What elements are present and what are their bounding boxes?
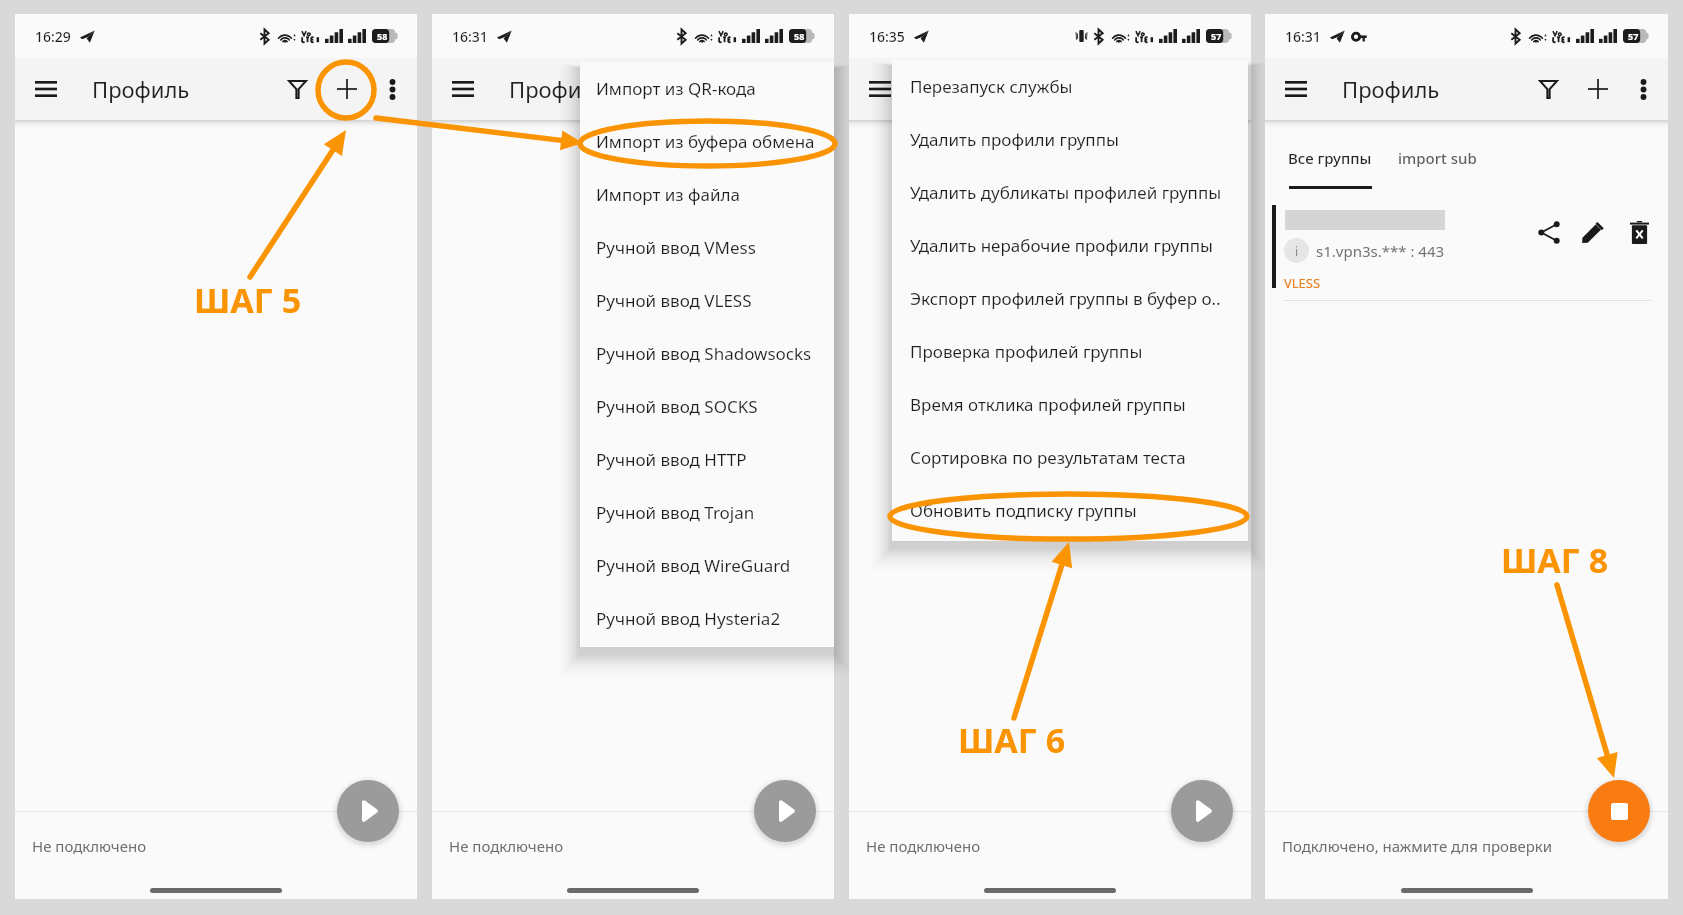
button[interactable]: Open navigation menu	[1277, 70, 1315, 108]
button[interactable]: Delete	[1621, 214, 1657, 250]
staticText: Обновить подписку группы	[910, 499, 1137, 522]
staticText: Проверка профилей группы	[910, 340, 1143, 363]
button[interactable]: Проверка профилей группы	[892, 325, 1248, 378]
button[interactable]: import sub	[1392, 144, 1483, 172]
staticText: ШАГ 8	[1501, 537, 1609, 583]
staticText: Не подключено	[449, 836, 564, 856]
staticText: Профиль	[1342, 74, 1440, 104]
staticText: Подключено, нажмите для проверки	[1282, 836, 1553, 856]
staticText: 16:35	[869, 27, 905, 46]
staticText: 57	[1211, 30, 1222, 42]
staticText: VLESS	[1284, 274, 1321, 292]
staticText: Ручной ввод Trojan	[596, 501, 755, 524]
staticText: ШАГ 5	[194, 277, 302, 323]
button[interactable]: Ручной ввод Shadowsocks	[580, 327, 834, 380]
staticText: 16:31	[1285, 27, 1321, 46]
button[interactable]: Время отклика профилей группы	[892, 378, 1248, 431]
staticText: Ручной ввод Hysteria2	[596, 607, 781, 630]
button[interactable]: Экспорт профилей группы в буфер о..	[892, 272, 1248, 325]
staticText: s1.vpn3s.*** : 443	[1316, 241, 1445, 261]
button[interactable]: Все группы	[1282, 144, 1378, 189]
button[interactable]: Filter	[688, 66, 740, 112]
button[interactable]: Start connection	[337, 780, 399, 842]
staticText: Не подключено	[32, 836, 147, 856]
staticText: Ручной ввод VLESS	[596, 289, 752, 312]
staticText: i	[1295, 243, 1299, 259]
staticText: ШАГ 6	[958, 717, 1066, 763]
button[interactable]: Ручной ввод HTTP	[580, 433, 834, 486]
button[interactable]: Share	[1531, 214, 1567, 250]
staticText: Профиль	[92, 74, 190, 104]
button[interactable]: Filter	[1522, 66, 1574, 112]
button[interactable]: Open navigation menu	[861, 70, 899, 108]
button[interactable]: Удалить дубликаты профилей группы	[892, 166, 1248, 219]
staticText: Импорт из буфера обмена	[596, 130, 815, 153]
button[interactable]: Open navigation menu	[444, 70, 482, 108]
staticText: 57	[1628, 30, 1639, 42]
button[interactable]: Импорт из файла	[580, 168, 834, 221]
button[interactable]: Импорт из буфера обмена	[580, 115, 834, 168]
button[interactable]: Перезапуск службы	[892, 60, 1248, 113]
button[interactable]: Add profile	[323, 65, 371, 113]
button[interactable]: Start connection	[1171, 780, 1233, 842]
staticText: Удалить дубликаты профилей группы	[910, 181, 1222, 204]
button[interactable]: Add profile	[1574, 65, 1622, 113]
button[interactable]: i	[1265, 205, 1668, 288]
button[interactable]: Add profile	[740, 65, 788, 113]
staticText: Время отклика профилей группы	[910, 393, 1186, 416]
button[interactable]: Ручной ввод VMess	[580, 221, 834, 274]
staticText: Экспорт профилей группы в буфер о..	[910, 287, 1221, 310]
button[interactable]: Ручной ввод Trojan	[580, 486, 834, 539]
staticText: 58	[377, 30, 388, 42]
button[interactable]: Edit	[1575, 214, 1611, 250]
button[interactable]: Filter	[271, 66, 323, 112]
button[interactable]: Ручной ввод SOCKS	[580, 380, 834, 433]
staticText: Профиль	[926, 74, 1024, 104]
button[interactable]: More options	[1622, 68, 1664, 110]
button[interactable]: Ручной ввод VLESS	[580, 274, 834, 327]
staticText: Ручной ввод SOCKS	[596, 395, 758, 418]
button[interactable]: Сортировка по результатам теста	[892, 431, 1248, 484]
staticText: Ручной ввод VMess	[596, 236, 756, 259]
staticText: Не подключено	[866, 836, 981, 856]
button[interactable]: Stop connection	[1588, 780, 1650, 842]
staticText: Профиль	[509, 74, 607, 104]
staticText: Импорт из QR-кода	[596, 77, 756, 100]
button[interactable]: Импорт из QR-кода	[580, 62, 834, 115]
staticText: 58	[794, 30, 805, 42]
staticText: Ручной ввод HTTP	[596, 448, 747, 471]
button[interactable]: Удалить нерабочие профили группы	[892, 219, 1248, 272]
staticText: Ручной ввод Shadowsocks	[596, 342, 812, 365]
staticText: 16:31	[452, 27, 488, 46]
staticText: Перезапуск службы	[910, 75, 1073, 98]
button[interactable]: Ручной ввод Hysteria2	[580, 592, 834, 645]
staticText: Удалить профили группы	[910, 128, 1119, 151]
staticText: Удалить нерабочие профили группы	[910, 234, 1213, 257]
staticText: 16:29	[35, 27, 71, 46]
staticText: Сортировка по результатам теста	[910, 446, 1186, 469]
button[interactable]: Open navigation menu	[27, 70, 65, 108]
button[interactable]: More options	[371, 68, 413, 110]
staticText: Все группы	[1288, 148, 1372, 168]
button[interactable]: Ручной ввод WireGuard	[580, 539, 834, 592]
staticText: Импорт из файла	[596, 183, 741, 206]
button[interactable]: Start connection	[754, 780, 816, 842]
button[interactable]: Обновить подписку группы	[892, 484, 1248, 537]
button[interactable]: Удалить профили группы	[892, 113, 1248, 166]
staticText: Ручной ввод WireGuard	[596, 554, 791, 577]
